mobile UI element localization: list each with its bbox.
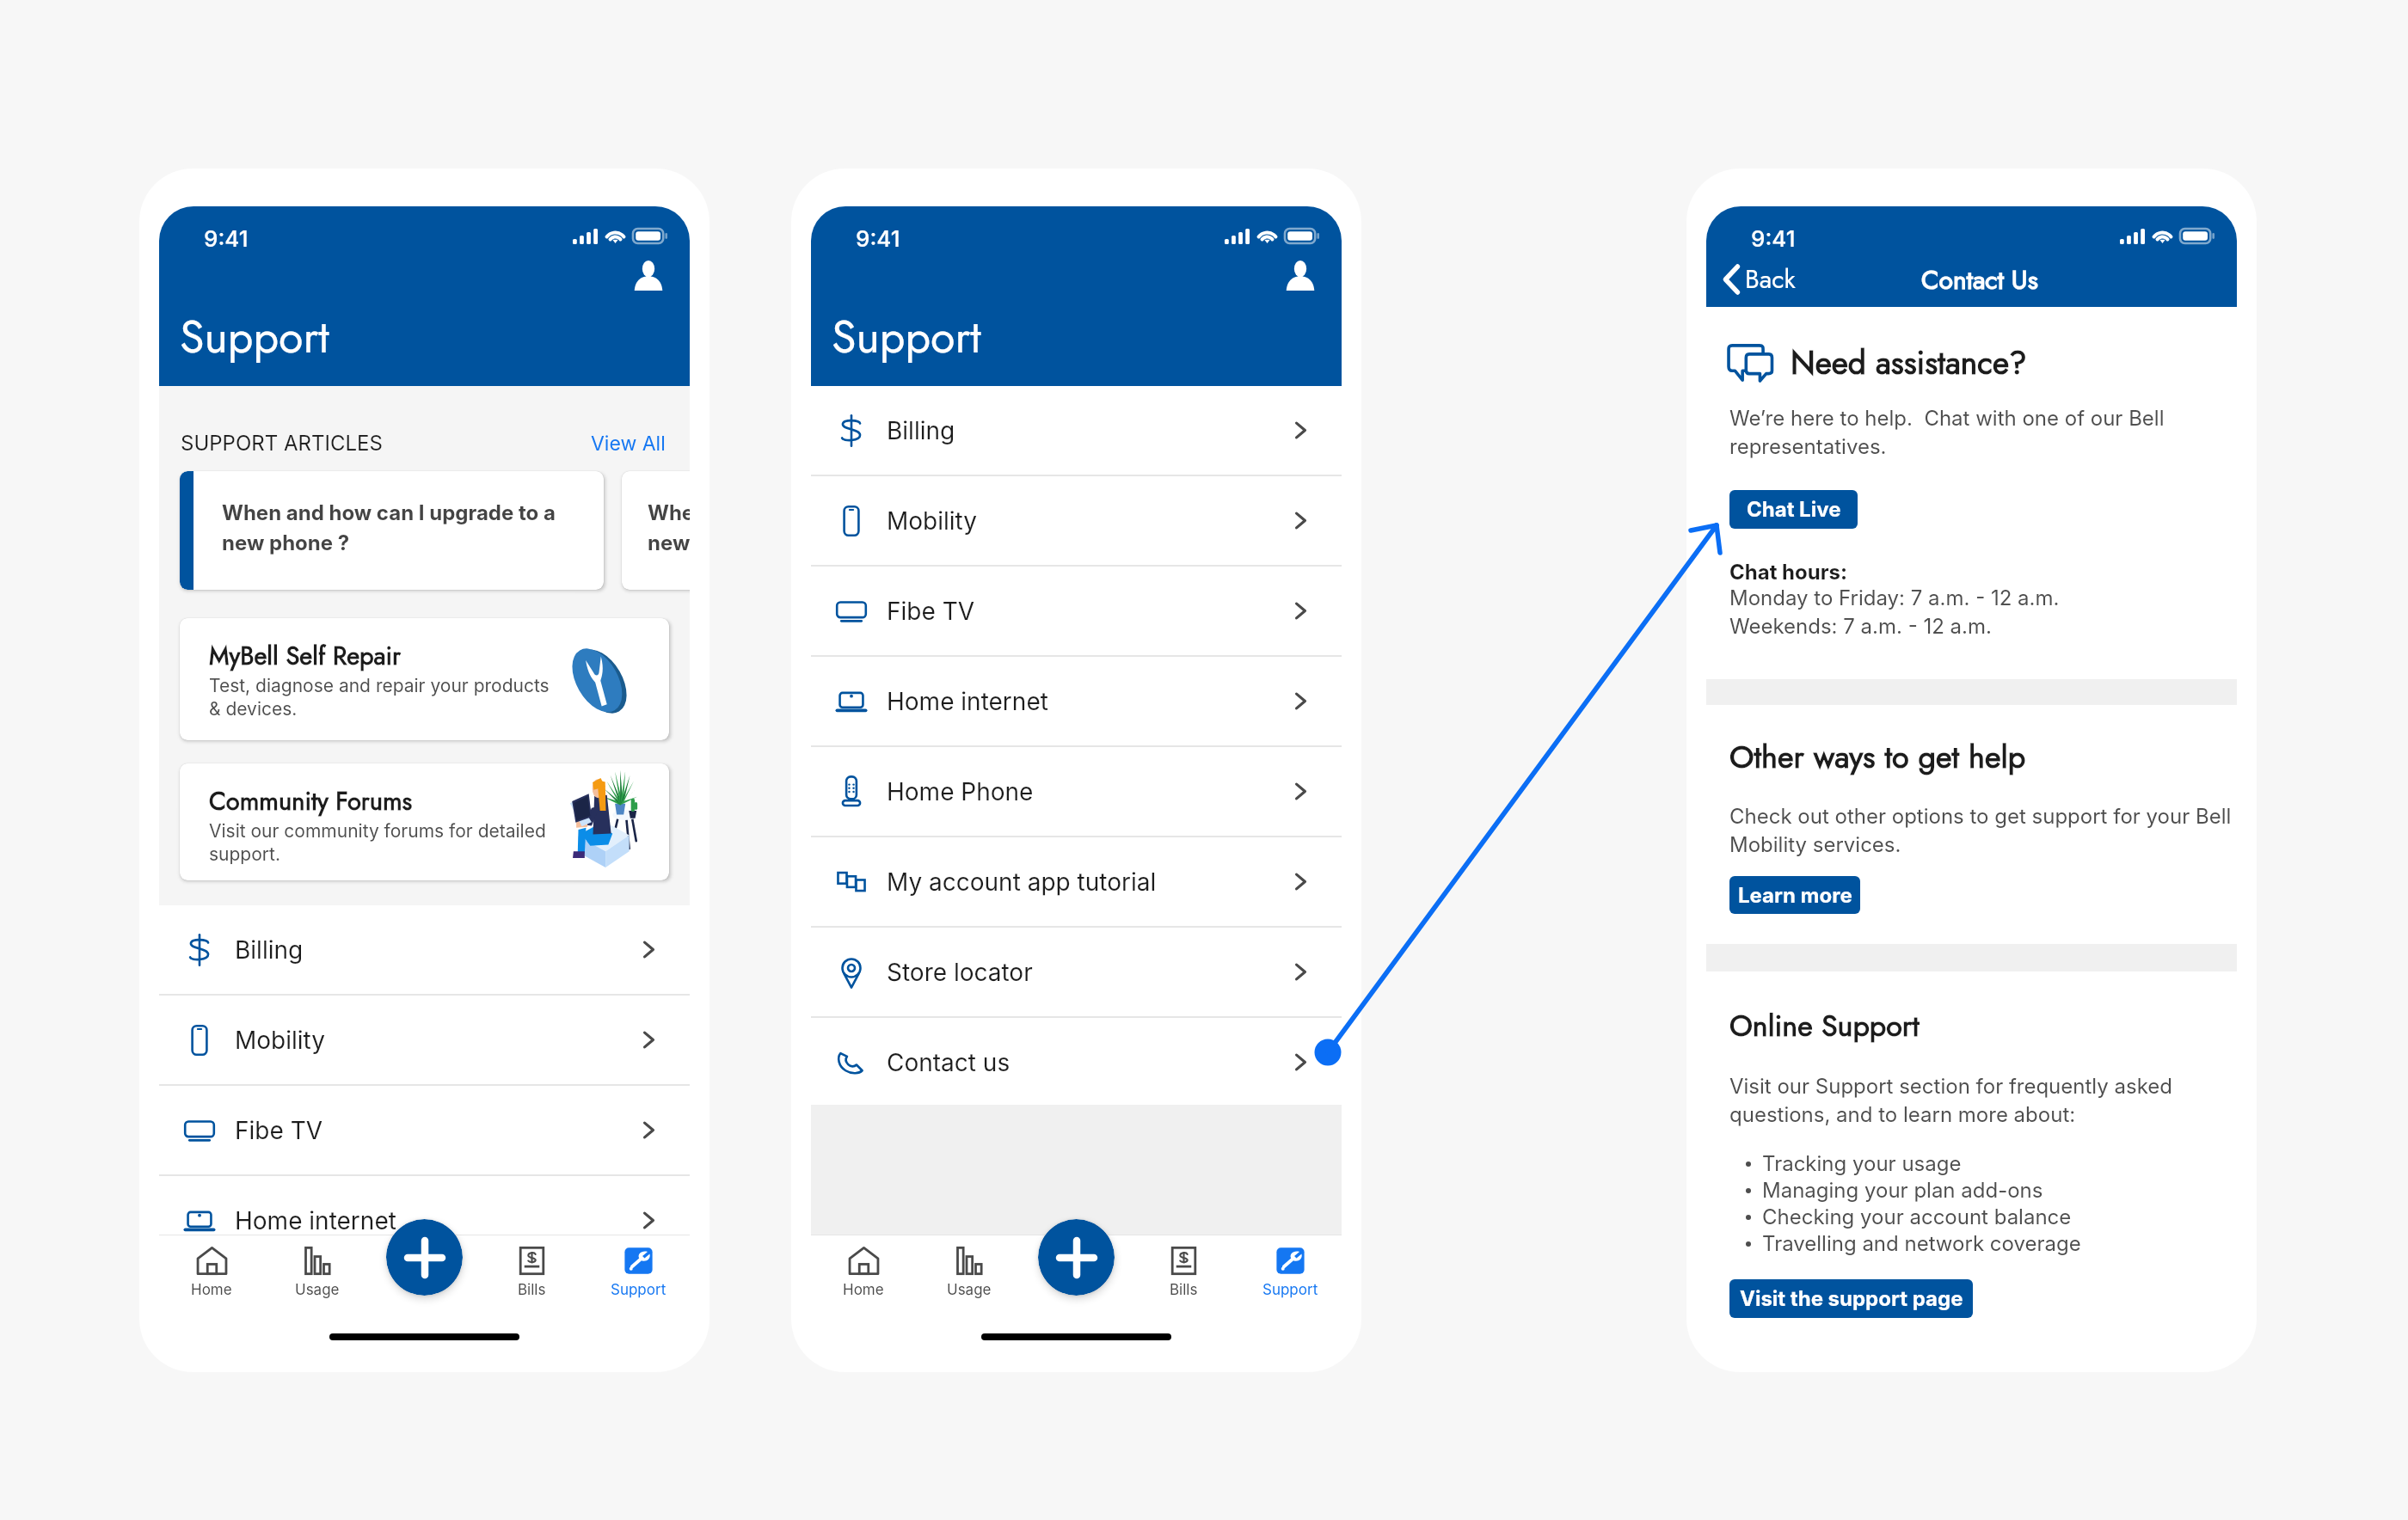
staticText: Home internet [235,1206,396,1235]
button[interactable]: Billing [159,905,690,994]
button[interactable]: Store locator [811,928,1342,1016]
staticText: Billing [235,935,304,965]
button[interactable]: Usage [921,1236,1017,1319]
button[interactable]: Chat Live [1729,490,1858,529]
button[interactable]: Learn more [1729,876,1860,914]
button[interactable]: Usage [269,1236,365,1319]
staticText: Support [1262,1281,1318,1299]
button[interactable]: Add [386,1219,463,1296]
staticText: MyBell Self Repair [209,638,402,674]
staticText: Home Phone [887,777,1034,806]
button[interactable]: Home Phone [811,747,1342,836]
staticText: Community Forums [209,783,413,819]
staticText: Visit our community forums for detailed … [209,820,546,865]
staticText: Fibe TV [887,597,975,626]
staticText: SUPPORT ARTICLES [181,431,383,456]
staticText: View All [591,432,666,456]
button[interactable]: View All [555,432,666,456]
button[interactable]: Home internet [811,657,1342,745]
button[interactable]: Fibe TV [811,567,1342,655]
staticText: Checking your account balance [1762,1204,2072,1229]
staticText: When and how can I upgrade to a new phon… [648,500,690,555]
button[interactable]: Home [815,1236,912,1319]
staticText: Fibe TV [235,1116,323,1145]
staticText: Support [611,1281,666,1299]
button[interactable]: Back [1723,260,1796,297]
staticText: Contact us [887,1048,1010,1077]
button[interactable]: Account [1286,260,1315,291]
button[interactable]: When and how can I upgrade to a new phon… [180,471,604,590]
staticText: Bills [518,1281,546,1299]
staticText: Home [843,1281,884,1299]
staticText: Travelling and network coverage [1762,1231,2081,1256]
staticText: Contact Us [1921,261,2038,298]
button[interactable]: Bills [483,1236,580,1319]
staticText: Need assistance? [1791,340,2027,385]
staticText: When and how can I upgrade to a new phon… [222,500,592,555]
staticText: Chat Live [1747,497,1841,522]
button[interactable]: Home [163,1236,260,1319]
button[interactable]: My account app tutorial [811,837,1342,926]
button[interactable]: Fibe TV [159,1086,690,1174]
staticText: Visit our Support section for frequently… [1729,1074,2172,1126]
button[interactable]: Bills [1135,1236,1232,1319]
staticText: 9:41 [856,225,900,252]
button[interactable]: Visit the support page [1729,1279,1973,1318]
button[interactable]: Support [1242,1236,1338,1319]
button[interactable]: Mobility [811,476,1342,565]
button[interactable]: Account [634,260,663,291]
staticText: Other ways to get help [1729,734,2026,779]
staticText: Online Support [1729,1005,1920,1047]
staticText: Managing your plan add-ons [1762,1178,2043,1203]
staticText: We’re here to help. Chat with one of our… [1729,406,2165,458]
staticText: Support [180,304,329,369]
staticText: Home internet [887,687,1048,716]
button[interactable]: Billing [811,386,1342,475]
staticText: Check out other options to get support f… [1729,804,2232,856]
staticText: Billing [887,416,955,445]
staticText: Support [832,304,981,369]
staticText: 9:41 [1751,225,1796,252]
button[interactable]: When and how can I upgrade to a new phon… [622,471,690,590]
staticText: Home [191,1281,232,1299]
staticText: Monday to Friday: 7 a.m. - 12 a.m. Weeke… [1729,585,2060,638]
staticText: Tracking your usage [1762,1151,1962,1176]
staticText: Bills [1170,1281,1198,1299]
staticText: Chat hours: [1729,560,1847,585]
button[interactable]: Mobility [159,996,690,1084]
staticText: Visit the support page [1740,1286,1963,1311]
staticText: My account app tutorial [887,867,1157,897]
staticText: Usage [295,1281,340,1299]
button[interactable]: Community Forums [180,763,669,880]
staticText: Test, diagnose and repair your products … [209,675,550,720]
button[interactable]: MyBell Self Repair [180,618,669,740]
button[interactable]: Home internet [159,1176,690,1265]
staticText: 9:41 [204,225,249,252]
button[interactable]: Add [1038,1219,1115,1296]
staticText: Back [1745,260,1796,297]
staticText: Store locator [887,958,1033,987]
staticText: Mobility [887,506,978,536]
button[interactable]: Support [590,1236,686,1319]
staticText: Usage [947,1281,992,1299]
staticText: Learn more [1738,883,1852,908]
staticText: Mobility [235,1026,326,1055]
button[interactable]: Contact us [811,1018,1342,1106]
